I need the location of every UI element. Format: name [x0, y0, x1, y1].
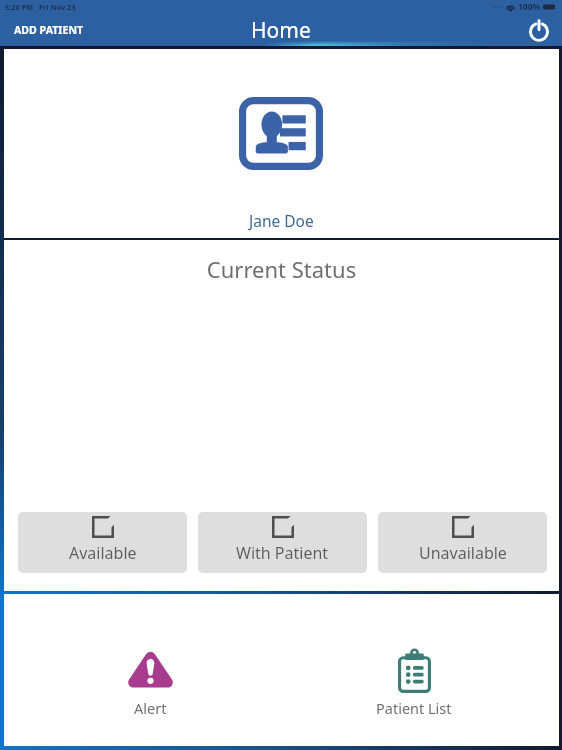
staticText: Patient List — [376, 698, 452, 718]
staticText: 100% — [518, 1, 541, 13]
staticText: Jane Doe — [249, 210, 314, 231]
staticText: With Patient — [236, 542, 329, 564]
button[interactable]: Alert — [58, 594, 242, 750]
staticText: 5:20 PM Fri Nov 23 — [5, 2, 76, 12]
button[interactable]: With Patient — [198, 512, 367, 573]
button[interactable]: Patient List — [322, 594, 506, 750]
button[interactable]: Unavailable — [378, 512, 547, 573]
staticText: Alert — [134, 698, 167, 718]
staticText: Home — [251, 16, 311, 45]
button[interactable]: Power — [525, 16, 553, 44]
staticText: Available — [69, 542, 137, 564]
staticText: Unavailable — [419, 542, 507, 564]
button[interactable]: Available — [18, 512, 187, 573]
staticText: ADD PATIENT — [14, 23, 84, 37]
staticText: Current Status — [4, 254, 559, 284]
button[interactable]: ADD PATIENT — [0, 17, 95, 43]
